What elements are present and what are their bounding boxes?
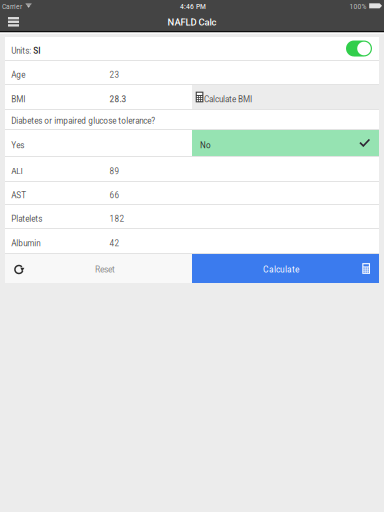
staticText: 4:46 PM: [180, 3, 206, 11]
staticText: Age: [11, 70, 25, 80]
staticText: Albumin: [11, 239, 40, 248]
staticText: 89: [109, 167, 119, 176]
staticText: Platelets: [11, 214, 42, 224]
staticText: 182: [109, 214, 124, 224]
button[interactable]: Calculate: [192, 254, 379, 283]
staticText: BMI: [11, 95, 25, 104]
button[interactable]: Reset: [5, 254, 192, 283]
button[interactable]: Open navigation menu: [0, 12, 30, 31]
button[interactable]: Calculate BMI: [192, 85, 379, 109]
staticText: 28.3: [109, 95, 126, 104]
staticText: No: [200, 141, 211, 150]
button[interactable]: No: [192, 130, 379, 156]
staticText: 23: [109, 70, 119, 80]
staticText: Carrier: [2, 3, 22, 11]
staticText: Calculate: [263, 264, 299, 274]
staticText: 42: [109, 239, 119, 248]
button[interactable]: Units, SI, on: [346, 40, 372, 56]
staticText: Units:: [11, 46, 33, 56]
staticText: 100%: [350, 3, 367, 11]
staticText: SI: [33, 46, 40, 56]
staticText: NAFLD Calc: [167, 17, 216, 28]
staticText: Calculate BMI: [204, 95, 252, 104]
staticText: Yes: [11, 141, 24, 150]
staticText: 66: [109, 191, 119, 200]
staticText: ALT: [11, 167, 24, 176]
staticText: Reset: [95, 264, 115, 274]
button[interactable]: Yes: [5, 130, 192, 156]
staticText: Diabetes or impaired glucose tolerance?: [11, 116, 155, 126]
staticText: AST: [11, 191, 26, 200]
